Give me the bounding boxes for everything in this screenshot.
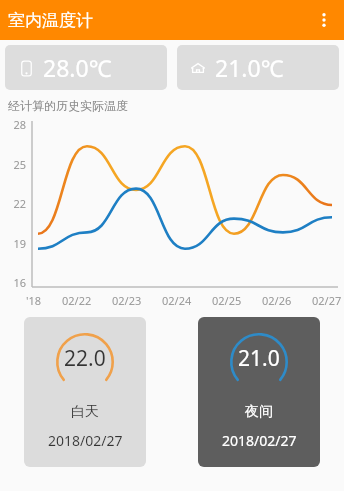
staticText: 28	[13, 117, 26, 129]
staticText: 室内温度计	[8, 10, 93, 31]
button[interactable]: 22.0	[24, 317, 146, 467]
staticText: 22	[13, 196, 26, 208]
staticText: 02/27	[312, 293, 342, 308]
staticText: 白天	[71, 403, 99, 421]
staticText: 02/22	[62, 293, 92, 308]
button[interactable]: Phone temperature	[5, 45, 167, 90]
staticText: 28.0℃	[43, 52, 112, 83]
button[interactable]: More options	[304, 0, 344, 40]
button[interactable]: 21.0	[198, 317, 320, 467]
staticText: '18	[26, 293, 42, 308]
staticText: 02/26	[262, 293, 292, 308]
staticText: 16	[13, 275, 26, 287]
staticText: 02/25	[212, 293, 242, 308]
staticText: 25	[13, 157, 26, 169]
button[interactable]: Home temperature	[177, 45, 339, 90]
staticText: 02/24	[162, 293, 192, 308]
staticText: 02/23	[112, 293, 142, 308]
staticText: 22.0	[64, 344, 106, 373]
staticText: 2018/02/27	[48, 431, 123, 450]
staticText: 21.0	[238, 344, 280, 373]
staticText: 2018/02/27	[222, 431, 297, 450]
staticText: 夜间	[245, 403, 273, 421]
staticText: 19	[13, 236, 26, 248]
staticText: 经计算的历史实际温度	[8, 98, 128, 113]
staticText: 21.0℃	[215, 52, 284, 83]
